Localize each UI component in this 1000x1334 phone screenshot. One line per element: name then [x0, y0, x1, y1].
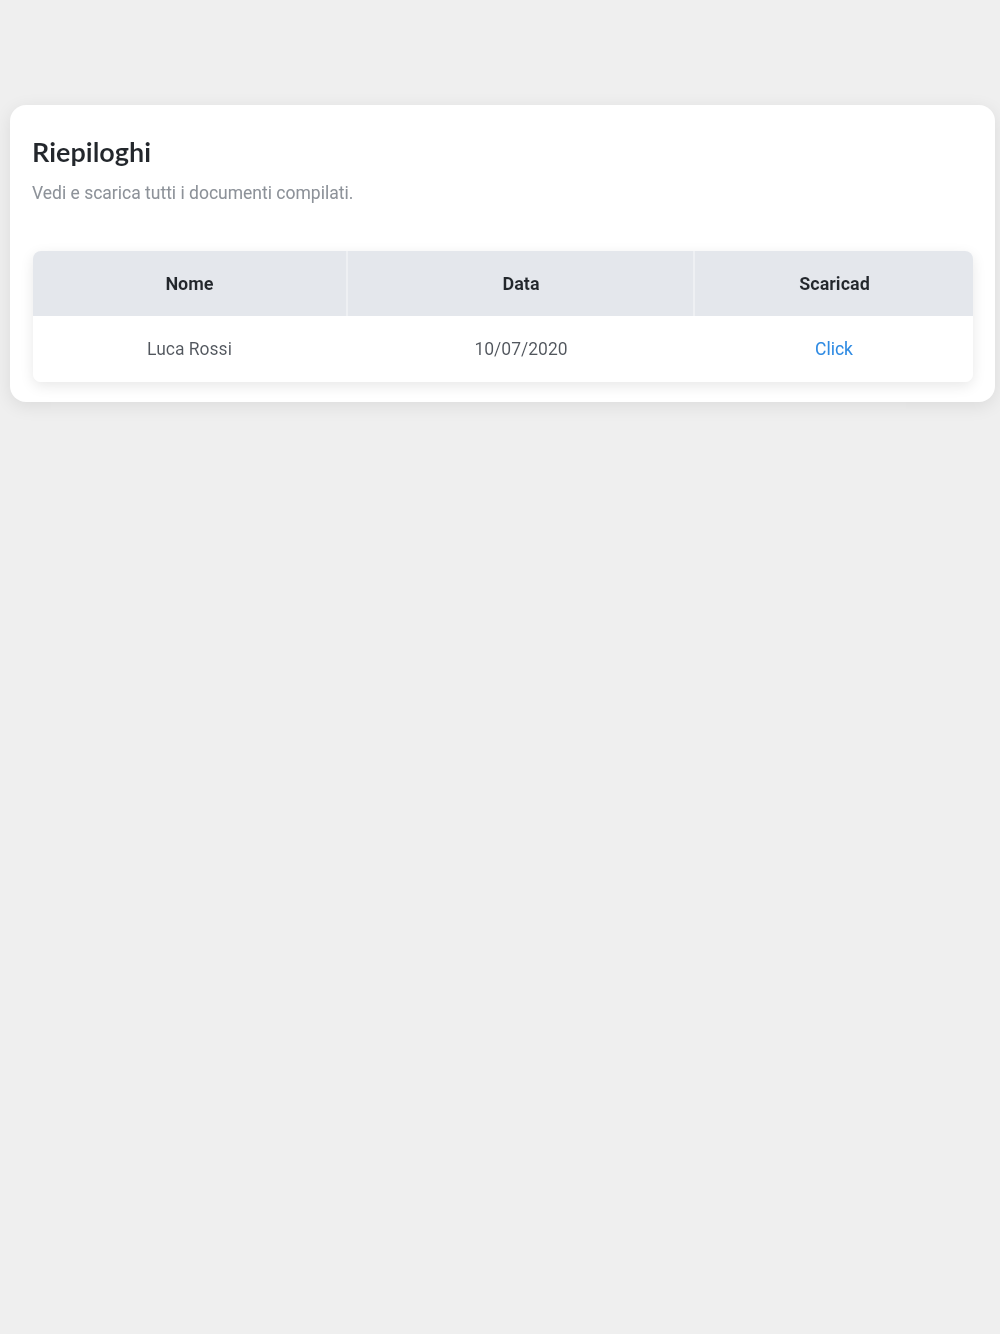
staticText: 10/07/2020	[474, 339, 568, 360]
staticText: Click	[815, 339, 853, 360]
staticText: Vedi e scarica tutti i documenti compila…	[32, 183, 354, 204]
staticText: Riepiloghi	[32, 135, 152, 167]
staticText: Scaricad	[799, 273, 870, 294]
button[interactable]: Click	[695, 316, 973, 382]
staticText: Nome	[165, 273, 214, 294]
staticText: Luca Rossi	[147, 339, 232, 360]
staticText: Data	[502, 273, 540, 294]
